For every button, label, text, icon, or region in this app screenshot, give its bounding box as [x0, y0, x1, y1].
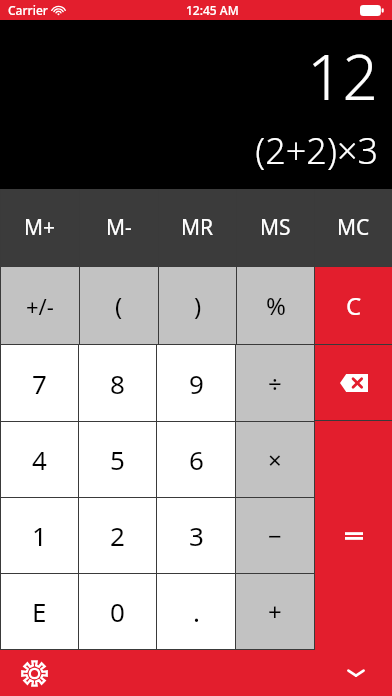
button[interactable]: +: [236, 574, 314, 649]
staticText: .: [193, 594, 200, 629]
button[interactable]: 1: [1, 498, 78, 573]
button[interactable]: Backspace: [315, 345, 392, 420]
button[interactable]: Collapse: [336, 653, 376, 693]
staticText: −: [268, 519, 282, 552]
staticText: M+: [24, 213, 56, 242]
button[interactable]: +/-: [1, 267, 79, 344]
button[interactable]: MC: [315, 189, 392, 266]
button[interactable]: 9: [157, 345, 235, 421]
button[interactable]: MS: [237, 189, 314, 266]
button[interactable]: 2: [79, 498, 156, 573]
staticText: (: [115, 289, 123, 322]
button[interactable]: 8: [79, 345, 156, 421]
staticText: 12:45 AM: [186, 2, 239, 18]
staticText: 5: [110, 442, 125, 477]
button[interactable]: ÷: [236, 345, 314, 421]
staticText: MS: [260, 213, 291, 242]
button[interactable]: M-: [80, 189, 158, 266]
staticText: %: [266, 289, 286, 322]
staticText: E: [32, 594, 47, 629]
staticText: MR: [181, 213, 214, 242]
button[interactable]: %: [237, 267, 314, 344]
staticText: 8: [110, 366, 125, 401]
staticText: 9: [189, 366, 204, 401]
staticText: M-: [106, 213, 132, 242]
staticText: 6: [189, 442, 204, 477]
button[interactable]: .: [157, 574, 235, 649]
button[interactable]: 7: [1, 345, 78, 421]
button[interactable]: (: [80, 267, 158, 344]
staticText: ): [194, 289, 202, 322]
button[interactable]: ): [159, 267, 236, 344]
button[interactable]: Settings: [14, 653, 54, 693]
button[interactable]: E: [1, 574, 78, 649]
staticText: 2: [110, 518, 125, 553]
button[interactable]: 5: [79, 422, 156, 497]
staticText: +/-: [26, 291, 54, 321]
staticText: (2+2)×3: [255, 126, 378, 175]
staticText: 12: [307, 34, 378, 118]
button[interactable]: 3: [157, 498, 235, 573]
staticText: 7: [32, 366, 47, 401]
button[interactable]: [315, 421, 392, 650]
staticText: 0: [110, 594, 125, 629]
button[interactable]: M+: [1, 189, 79, 266]
button[interactable]: −: [236, 498, 314, 573]
button[interactable]: ×: [236, 422, 314, 497]
staticText: 3: [189, 518, 204, 553]
staticText: MC: [337, 213, 370, 242]
button[interactable]: 6: [157, 422, 235, 497]
staticText: Carrier: [8, 2, 48, 18]
staticText: ×: [268, 443, 282, 476]
staticText: ÷: [268, 367, 282, 400]
button[interactable]: 0: [79, 574, 156, 649]
button[interactable]: C: [315, 267, 392, 344]
button[interactable]: MR: [159, 189, 236, 266]
staticText: +: [268, 595, 282, 628]
staticText: 4: [32, 442, 47, 477]
button[interactable]: 4: [1, 422, 78, 497]
staticText: 1: [32, 518, 47, 553]
staticText: C: [346, 289, 362, 322]
